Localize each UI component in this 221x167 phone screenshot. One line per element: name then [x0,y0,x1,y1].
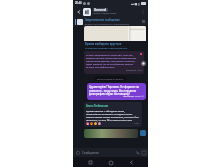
button[interactable]: Pinned list [141,19,146,24]
button[interactable]: More options [139,8,146,15]
button[interactable] [84,129,138,138]
button[interactable]: Закрепленное сообщение [75,17,146,26]
staticText: Время выбирать круглые [85,42,122,46]
button[interactable]: Back [128,159,135,166]
staticText: Анна Любимова [86,104,109,108]
button[interactable]: Back [75,8,82,15]
staticText: 🔥 [90,123,93,125]
staticText: General [94,8,107,12]
button[interactable]: Mute [141,61,146,66]
staticText: изменено 12:04 [126,69,142,72]
button[interactable]: 🔥 [90,122,93,125]
staticText: 📎 [136,151,140,155]
staticText: прочитано 14:12 ✓✓ [123,95,144,98]
staticText: ⌄ [109,9,112,12]
button[interactable]: Voice message [141,150,146,155]
staticText: Сообщение [82,151,99,155]
button[interactable]: ❤ [86,122,89,125]
button[interactable]: Очень понравилось качество. Толстое рамк… [86,53,142,72]
staticText: 20:46 [75,1,82,5]
button[interactable] [84,26,146,41]
staticText: Здравствуйте! А обсудите заказ, пожалуйс… [86,109,140,121]
staticText: Очень понравилось качество. Толстое рамк… [86,53,139,68]
button[interactable]: Здравствуйте! Торговое. Не формате ли от… [89,85,144,98]
button[interactable]: Recents [87,159,94,166]
button[interactable]: Анна Любимова [86,104,140,125]
button[interactable]: Scroll to bottom [140,130,146,136]
staticText: Закрепленное сообщение [85,18,120,22]
button[interactable]: Home [107,159,114,166]
staticText: 👍 [94,123,97,125]
button[interactable]: 👍 [94,122,97,125]
staticText: Здравствуйте! Торговое. Не формате ли от… [89,85,144,95]
staticText: Вы вступили в группу [97,77,124,80]
staticText: основные режимы Максим(Смотр) [85,46,128,49]
button[interactable]: Emoji [75,150,80,155]
button[interactable]: Attach [135,150,140,155]
button[interactable]: General [93,8,139,15]
staticText: сообщ. подписчиков [93,12,117,15]
staticText: 🌸 [98,123,101,125]
button[interactable]: 🌸 [98,122,101,125]
staticText: ◂◂ ▮▮ ▯ [131,2,140,5]
button[interactable] [83,8,91,16]
button[interactable]: Сообщение [82,151,135,155]
staticText: ❤ [87,123,89,125]
staticText: 14:31 [134,122,140,125]
staticText: Всем в чат! Пожалуйста, ознакомьтесь [85,22,130,25]
